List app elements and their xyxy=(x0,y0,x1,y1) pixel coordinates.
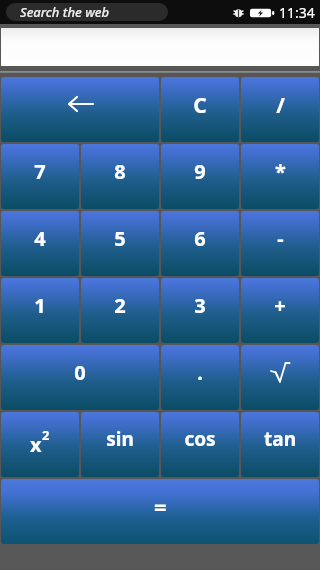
staticText: x xyxy=(30,431,42,458)
staticText: . xyxy=(197,359,203,386)
staticText: 5 xyxy=(114,225,126,252)
staticText: 8 xyxy=(114,158,126,185)
button[interactable]: * xyxy=(241,144,319,209)
button[interactable]: 8 xyxy=(81,144,159,209)
button[interactable]: sin xyxy=(81,412,159,477)
button[interactable]: / xyxy=(241,77,319,142)
staticText: Search the web xyxy=(20,3,110,21)
button[interactable]: 1 xyxy=(1,278,79,343)
staticText: 11:34 xyxy=(279,3,315,22)
button[interactable]: Backspace xyxy=(1,77,159,142)
staticText: = xyxy=(154,491,167,521)
button[interactable]: C xyxy=(161,77,239,142)
button[interactable]: 7 xyxy=(1,144,79,209)
staticText: 7 xyxy=(34,158,46,185)
staticText: * xyxy=(275,158,286,185)
button[interactable]: = xyxy=(1,479,319,544)
button[interactable]: Search the web xyxy=(6,3,168,21)
button[interactable]: 9 xyxy=(161,144,239,209)
button[interactable] xyxy=(1,28,319,66)
staticText: cos xyxy=(184,426,216,452)
staticText: 2 xyxy=(42,426,50,444)
button[interactable]: 4 xyxy=(1,211,79,276)
button[interactable]: + xyxy=(241,278,319,343)
staticText: 2 xyxy=(114,292,126,319)
button[interactable]: x squared xyxy=(1,412,79,477)
staticText: 4 xyxy=(34,225,46,252)
button[interactable]: . xyxy=(161,345,239,410)
staticText: 1 xyxy=(34,292,46,319)
button[interactable]: Square root xyxy=(241,345,319,410)
button[interactable]: 5 xyxy=(81,211,159,276)
button[interactable]: 2 xyxy=(81,278,159,343)
staticText: tan xyxy=(264,426,296,452)
staticText: sin xyxy=(106,426,134,452)
staticText: / xyxy=(276,91,285,120)
staticText: 6 xyxy=(194,225,206,252)
staticText: 0 xyxy=(74,359,86,386)
staticText: + xyxy=(274,292,286,319)
button[interactable]: 3 xyxy=(161,278,239,343)
button[interactable]: - xyxy=(241,211,319,276)
button[interactable]: tan xyxy=(241,412,319,477)
staticText: 3 xyxy=(194,292,206,319)
staticText: - xyxy=(277,225,284,252)
staticText: 9 xyxy=(194,158,206,185)
button[interactable]: 0 xyxy=(1,345,159,410)
staticText: C xyxy=(193,91,207,120)
button[interactable]: cos xyxy=(161,412,239,477)
button[interactable]: 6 xyxy=(161,211,239,276)
